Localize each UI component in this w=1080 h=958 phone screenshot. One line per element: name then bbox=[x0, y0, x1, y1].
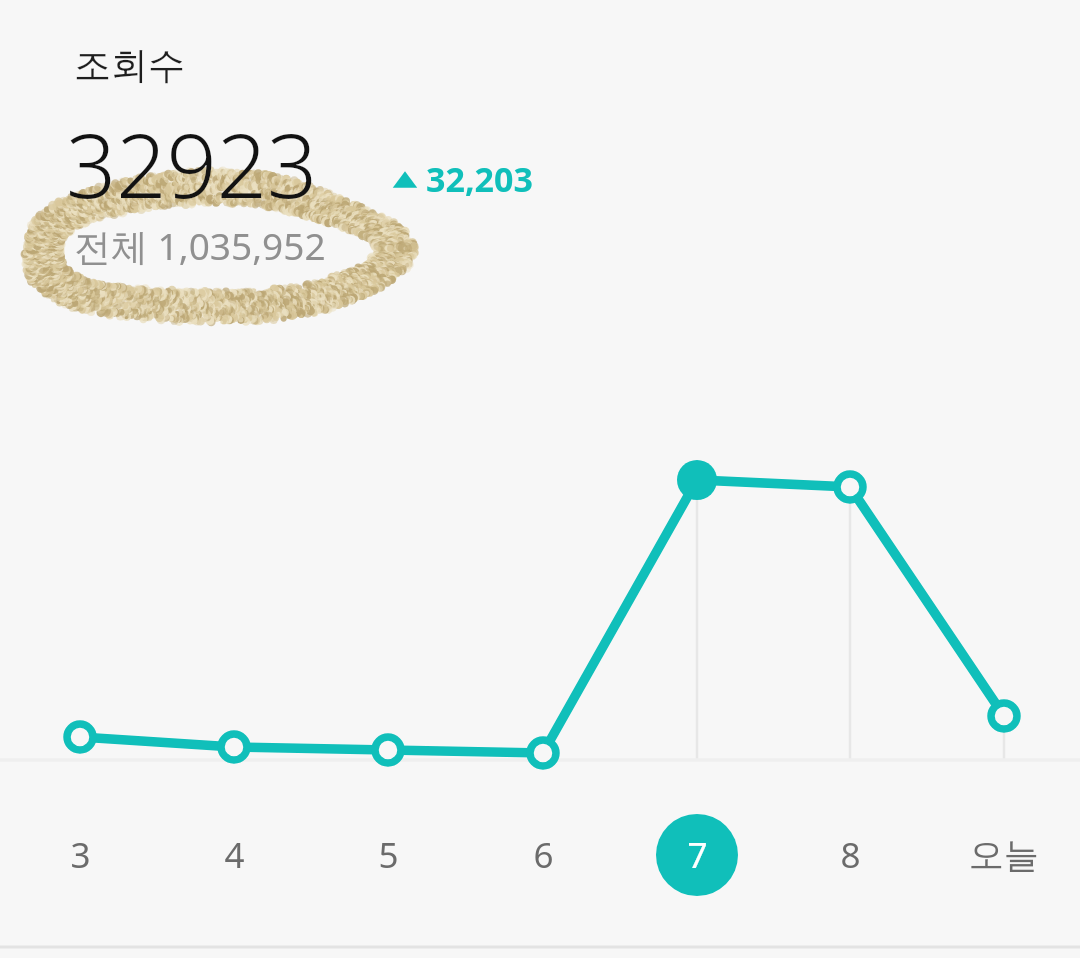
staticText: 4 bbox=[224, 831, 245, 879]
button[interactable]: 7 bbox=[621, 803, 773, 907]
staticText: 7 bbox=[687, 831, 708, 879]
staticText: 6 bbox=[533, 831, 554, 879]
button[interactable]: 8 bbox=[774, 803, 926, 907]
staticText: 3 bbox=[70, 831, 91, 879]
button[interactable]: 5 bbox=[312, 803, 464, 907]
button[interactable]: 오늘 bbox=[928, 803, 1080, 907]
button[interactable]: 6 bbox=[467, 803, 619, 907]
staticText: 조회수 bbox=[74, 42, 185, 89]
staticText: 5 bbox=[378, 831, 399, 879]
staticText: 오늘 bbox=[969, 833, 1039, 877]
staticText: 전체 1,035,952 bbox=[74, 220, 326, 271]
button[interactable]: 4 bbox=[158, 803, 310, 907]
staticText: 32,203 bbox=[426, 156, 533, 202]
button[interactable]: 32,203 bbox=[392, 156, 542, 202]
staticText: 32923 bbox=[66, 104, 318, 224]
staticText: 8 bbox=[840, 831, 861, 879]
button[interactable]: 3 bbox=[4, 803, 156, 907]
